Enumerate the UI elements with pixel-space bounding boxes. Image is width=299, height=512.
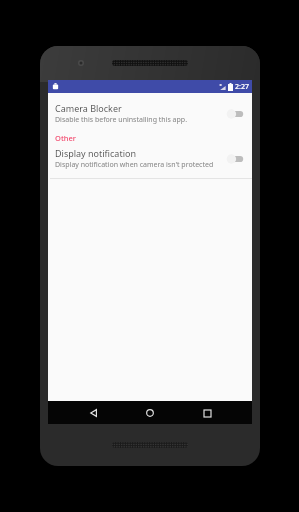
staticText: 2:27 <box>235 82 249 92</box>
staticText: Camera Blocker <box>55 102 122 114</box>
button[interactable]: Recent apps <box>196 402 218 424</box>
staticText: Disable this before uninstalling this ap… <box>55 115 188 125</box>
button[interactable]: Back <box>83 402 105 424</box>
button[interactable]: Toggle setting <box>226 152 246 166</box>
staticText: Display notification <box>55 147 136 159</box>
button[interactable]: Camera Blocker <box>48 93 252 127</box>
staticText: Display notification when camera isn't p… <box>55 160 214 170</box>
button[interactable]: Toggle setting <box>226 107 246 121</box>
staticText: Other <box>55 133 76 143</box>
button[interactable]: Display notification <box>48 145 252 172</box>
button[interactable]: Home <box>139 402 161 424</box>
